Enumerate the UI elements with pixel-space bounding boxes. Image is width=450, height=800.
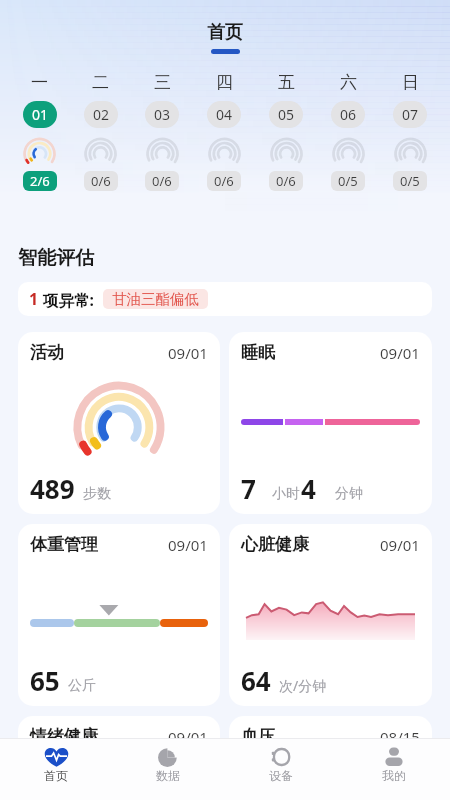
staticText: 05 bbox=[278, 105, 295, 124]
staticText: 64 bbox=[241, 663, 271, 698]
button[interactable]: 情绪健康 bbox=[18, 716, 220, 800]
button[interactable]: 心脏健康 bbox=[229, 524, 432, 706]
staticText: 首页 bbox=[44, 768, 68, 783]
button[interactable]: 设备 bbox=[224, 739, 337, 800]
staticText: 步数 bbox=[83, 485, 111, 503]
staticText: 小时 bbox=[272, 485, 300, 503]
staticText: 五 bbox=[278, 72, 295, 93]
staticText: 次/分钟 bbox=[279, 676, 327, 695]
staticText: 我的 bbox=[382, 768, 406, 783]
staticText: 09/01 bbox=[380, 535, 420, 555]
staticText: 03 bbox=[154, 105, 171, 124]
staticText: 活动 bbox=[30, 342, 64, 363]
button[interactable]: 二 bbox=[70, 72, 131, 191]
staticText: 0/6 bbox=[214, 172, 234, 190]
staticText: 六 bbox=[340, 72, 357, 93]
staticText: 数据 bbox=[156, 768, 180, 783]
staticText: 0/5 bbox=[338, 172, 358, 190]
staticText: 分钟 bbox=[335, 485, 363, 503]
staticText: 日 bbox=[402, 72, 419, 93]
staticText: 09/01 bbox=[168, 343, 208, 363]
staticText: 情绪健康 bbox=[30, 726, 98, 747]
staticText: 0/6 bbox=[152, 172, 172, 190]
staticText: 0/6 bbox=[276, 172, 296, 190]
button[interactable]: 数据 bbox=[112, 739, 224, 800]
staticText: 01 bbox=[32, 105, 49, 124]
staticText: 1 bbox=[29, 288, 39, 310]
staticText: 2/6 bbox=[30, 172, 50, 190]
staticText: 一 bbox=[31, 72, 48, 93]
staticText: 09/01 bbox=[168, 727, 208, 747]
button[interactable]: 活动 bbox=[18, 332, 220, 514]
button[interactable]: 四 bbox=[193, 72, 255, 191]
staticText: 三 bbox=[154, 72, 171, 93]
staticText: 0/5 bbox=[400, 172, 420, 190]
staticText: 血压 bbox=[241, 726, 275, 747]
button[interactable]: 我的 bbox=[337, 739, 450, 800]
button[interactable]: 首页 bbox=[0, 739, 112, 800]
staticText: 甘油三酯偏低 bbox=[112, 290, 199, 308]
button[interactable]: 一 bbox=[9, 72, 70, 191]
staticText: 09/01 bbox=[380, 343, 420, 363]
staticText: 公斤 bbox=[68, 677, 96, 695]
staticText: 09/01 bbox=[168, 535, 208, 555]
button[interactable]: 五 bbox=[255, 72, 317, 191]
staticText: 二 bbox=[92, 72, 109, 93]
staticText: 体重管理 bbox=[30, 534, 98, 555]
staticText: 08/15 bbox=[380, 727, 420, 747]
staticText: 智能评估 bbox=[18, 246, 94, 270]
staticText: 489 bbox=[30, 471, 75, 506]
staticText: 4 bbox=[301, 471, 316, 506]
staticText: 65 bbox=[30, 663, 60, 698]
button[interactable]: 血压 bbox=[229, 716, 432, 800]
staticText: 04 bbox=[216, 105, 233, 124]
staticText: 项异常: bbox=[43, 289, 94, 310]
staticText: 02 bbox=[93, 105, 110, 124]
staticText: 0/6 bbox=[91, 172, 111, 190]
staticText: 设备 bbox=[269, 768, 293, 783]
button[interactable]: 三 bbox=[131, 72, 193, 191]
staticText: 07 bbox=[402, 105, 419, 124]
button[interactable]: 1 bbox=[18, 282, 432, 316]
staticText: 06 bbox=[340, 105, 357, 124]
staticText: 7 bbox=[241, 471, 256, 506]
staticText: 首页 bbox=[207, 21, 243, 44]
button[interactable]: 日 bbox=[379, 72, 441, 191]
button[interactable]: 六 bbox=[317, 72, 379, 191]
staticText: 睡眠 bbox=[241, 342, 275, 363]
staticText: 心脏健康 bbox=[241, 534, 309, 555]
button[interactable]: 睡眠 bbox=[229, 332, 432, 514]
staticText: 四 bbox=[216, 72, 233, 93]
button[interactable]: 体重管理 bbox=[18, 524, 220, 706]
